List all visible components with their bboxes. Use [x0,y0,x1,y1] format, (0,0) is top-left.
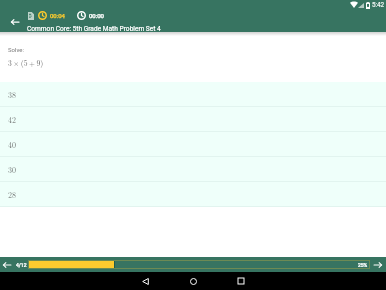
staticText: Solve: [8,46,24,53]
button[interactable]: Back [134,272,156,290]
staticText: 28 [8,189,16,200]
button[interactable]: Previous question [0,258,14,272]
staticText: 30 [8,164,16,175]
button[interactable]: Home [182,272,204,290]
button[interactable]: 42 [0,107,386,132]
button[interactable]: 40 [0,132,386,157]
staticText: 3 × (5 + 9) [8,57,44,68]
button[interactable]: 38 [0,82,386,107]
staticText: Common Core: 5th Grade Math Problem Set … [27,25,161,33]
staticText: 38 [8,89,16,100]
button[interactable]: 30 [0,157,386,182]
staticText: 40 [8,139,16,150]
staticText: 00:00 [89,12,104,19]
staticText: 4/12 [16,262,27,268]
staticText: 5:42 [372,1,385,8]
button[interactable]: Back [7,14,23,30]
button[interactable]: Recent apps [230,272,252,290]
staticText: 42 [8,114,16,125]
button[interactable]: Next question [371,258,385,272]
button[interactable]: 28 [0,182,386,207]
staticText: 00:04 [50,12,65,19]
staticText: 25% [358,262,368,268]
